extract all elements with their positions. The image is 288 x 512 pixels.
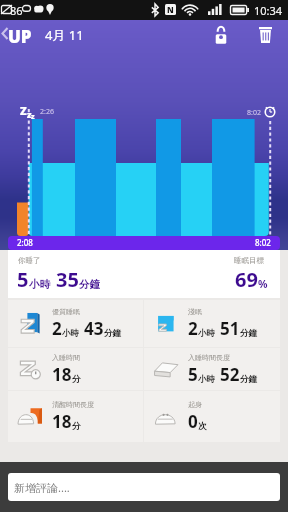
staticText: 2:26 — [40, 107, 54, 117]
staticText: 0 — [188, 410, 198, 433]
staticText: 86 — [10, 3, 23, 18]
staticText: 淺眠 — [188, 307, 202, 316]
staticText: 10:34 — [254, 3, 283, 18]
button[interactable]: 清醒時間長度 — [8, 391, 143, 442]
staticText: 2 — [188, 317, 198, 340]
staticText: 2 — [52, 317, 62, 340]
button[interactable]: Delete — [252, 22, 278, 48]
staticText: % — [258, 277, 268, 291]
staticText: 52 — [220, 363, 240, 386]
staticText: 69 — [235, 266, 258, 293]
staticText: 35 — [56, 266, 79, 293]
staticText: 分鐘 — [104, 328, 121, 339]
button[interactable]: 新增評論.... — [8, 473, 280, 501]
staticText: 清醒時間長度 — [52, 400, 94, 409]
staticText: 小時 — [29, 278, 50, 291]
staticText: 入睡時間長度 — [188, 353, 230, 362]
staticText: 睡眠目標 — [234, 256, 264, 265]
staticText: 入睡時間 — [52, 353, 80, 362]
staticText: 你睡了 — [18, 256, 41, 265]
staticText: 2:08 — [17, 237, 33, 248]
staticText: 小時 — [198, 374, 215, 385]
staticText: 8:02 — [255, 237, 271, 248]
staticText: 分鐘 — [79, 278, 100, 291]
button[interactable]: 入睡時間長度 — [144, 348, 280, 390]
button[interactable]: Back — [0, 22, 10, 44]
staticText: N — [167, 4, 174, 15]
staticText: 5 — [188, 363, 198, 386]
staticText: 分鐘 — [240, 328, 257, 339]
staticText: 5 — [17, 266, 29, 293]
button[interactable]: 優質睡眠 — [8, 300, 143, 347]
staticText: 小時 — [198, 328, 215, 339]
staticText: 18 — [52, 363, 72, 386]
staticText: Z — [20, 103, 27, 118]
staticText: 分 — [72, 374, 81, 385]
staticText: 8:02 — [247, 108, 261, 118]
staticText: 43 — [84, 317, 104, 340]
staticText: 優質睡眠 — [52, 307, 80, 316]
staticText: 起身 — [188, 400, 202, 409]
staticText: 分鐘 — [240, 374, 257, 385]
staticText: UP — [8, 25, 32, 48]
staticText: 51 — [220, 317, 240, 340]
button[interactable]: Lock — [208, 22, 234, 48]
staticText: 小時 — [62, 328, 79, 339]
staticText: 4月 11 — [45, 26, 84, 44]
staticText: 次 — [198, 421, 207, 432]
button[interactable]: 起身 — [144, 391, 280, 442]
staticText: 分 — [72, 421, 81, 432]
button[interactable]: 淺眠 — [144, 300, 280, 347]
button[interactable]: 你睡了 — [8, 250, 280, 298]
button[interactable]: 入睡時間 — [8, 348, 143, 390]
staticText: z — [31, 112, 35, 122]
staticText: z — [27, 108, 32, 120]
staticText: 新增評論.... — [14, 480, 70, 495]
staticText: 18 — [52, 410, 72, 433]
